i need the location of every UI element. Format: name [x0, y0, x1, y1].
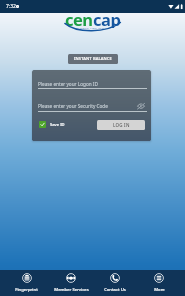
staticText: Please enter your Security Code: [38, 103, 108, 109]
staticText: Please enter your Logon ID: [38, 81, 98, 87]
button[interactable]: Save ID: [39, 121, 65, 128]
staticText: INSTANT BALANCE: [74, 56, 112, 62]
staticText: Save ID: [50, 122, 65, 128]
staticText: Contact Us: [104, 287, 126, 293]
staticText: 7:32: [6, 3, 16, 10]
button[interactable]: LOG IN: [97, 120, 145, 130]
staticText: Member Services: [54, 287, 89, 293]
button[interactable]: Show security code: [137, 103, 145, 109]
staticText: cen: [65, 8, 93, 28]
staticText: cap: [93, 8, 121, 28]
button[interactable]: More: [137, 270, 181, 293]
staticText: More: [154, 287, 165, 293]
button[interactable]: Member Services: [49, 270, 93, 293]
button[interactable]: Contact Us: [93, 270, 137, 293]
button[interactable]: INSTANT BALANCE: [68, 54, 118, 64]
staticText: central, state, local: [80, 26, 105, 29]
other: Settings: [16, 5, 19, 8]
button[interactable]: Fingerprint: [4, 270, 49, 293]
staticText: LOG IN: [113, 122, 130, 128]
staticText: Fingerprint: [15, 287, 38, 293]
